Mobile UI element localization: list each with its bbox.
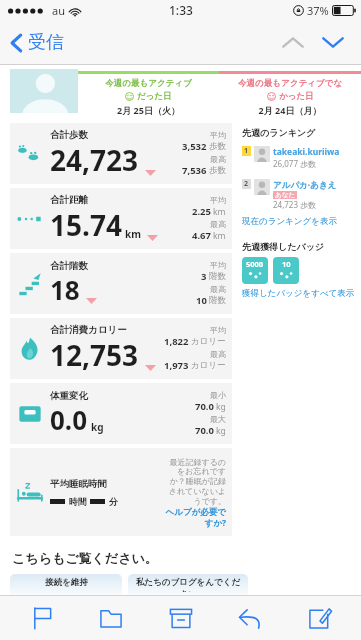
button[interactable]: Flag [14, 596, 70, 640]
button[interactable]: 5000 [242, 257, 268, 284]
button[interactable]: 合計階数 [10, 253, 232, 314]
staticText: 最高 [210, 219, 226, 229]
staticText: 歩数 [209, 141, 226, 152]
staticText: こちらもご覧ください。 [12, 550, 158, 566]
staticText: 15.74 [50, 206, 122, 244]
staticText: 最大 [210, 414, 226, 424]
button[interactable]: Next message [313, 22, 353, 62]
staticText: au [52, 3, 65, 18]
button[interactable]: 10 [273, 257, 299, 284]
staticText: kg [216, 425, 226, 437]
staticText: 0.0 [50, 402, 88, 437]
staticText: 今週の最もアクティブでな [219, 78, 361, 89]
staticText: 平均 [210, 260, 226, 270]
staticText: 平均睡眠時間 [50, 478, 107, 490]
staticText: 階数 [209, 295, 226, 306]
button[interactable]: Reply [222, 596, 278, 640]
staticText: 最高 [210, 349, 226, 359]
staticText: あなた [275, 191, 295, 199]
staticText: 2 [244, 179, 249, 189]
staticText: km [213, 206, 226, 218]
staticText: kg [216, 401, 226, 413]
staticText: 1,822 [164, 335, 189, 348]
staticText: 7,536 [182, 164, 207, 177]
button[interactable]: ヘルプが必要ですか? [164, 507, 226, 528]
staticText: 10 [282, 259, 291, 269]
staticText: 18 [50, 272, 80, 307]
staticText: 歩数 [209, 165, 226, 176]
staticText: 最高 [210, 284, 226, 294]
staticText: 平均 [210, 325, 226, 335]
staticText: 最近記録するのをお忘れですか？睡眠が記録されていないようです。 [164, 457, 226, 507]
staticText: 先週のランキング [242, 127, 316, 138]
staticText: 2.25 [192, 205, 211, 218]
button[interactable]: 合計距離 [10, 188, 232, 249]
button[interactable]: 平均睡眠時間 [10, 448, 232, 536]
staticText: アルパカ·あきえ [273, 179, 337, 191]
staticText: 体重変化 [50, 390, 88, 402]
staticText: 12,753 [50, 336, 139, 374]
staticText: 接続を維持 [45, 577, 88, 588]
staticText: カロリー [191, 336, 226, 347]
staticText: 時間 [69, 496, 87, 507]
staticText: 分 [109, 496, 118, 507]
staticText: 2月 24日（月） [219, 104, 361, 116]
button[interactable]: 受信 [6, 27, 68, 58]
button[interactable]: 獲得したバッジをすべて表示 [242, 288, 355, 299]
button[interactable]: Archive [153, 596, 209, 640]
staticText: 受信 [28, 31, 64, 54]
button[interactable]: 合計消費カロリー [10, 318, 232, 379]
staticText: 最小 [210, 390, 226, 400]
staticText: かった日 [279, 91, 314, 102]
staticText: 合計距離 [50, 194, 88, 206]
staticText: 26,077 歩数 [273, 158, 317, 169]
button[interactable]: 接続を維持 [10, 574, 122, 595]
staticText: 24,723 [50, 141, 139, 179]
staticText: 階数 [209, 271, 226, 282]
staticText: 4.67 [192, 229, 211, 242]
staticText: 1:33 [169, 2, 193, 18]
button[interactable]: Move to folder [83, 596, 139, 640]
staticText: 1,973 [164, 359, 189, 372]
button[interactable]: 2 [242, 179, 355, 210]
staticText: 最高 [210, 154, 226, 164]
staticText: 24,723 歩数 [273, 199, 317, 210]
button[interactable]: Compose [292, 596, 348, 640]
staticText: 70.0 [195, 424, 214, 437]
staticText: km [213, 230, 226, 242]
button[interactable]: 合計歩数 [10, 123, 232, 184]
staticText: 今週の最もアクティブ [78, 78, 219, 89]
staticText: 3 [201, 270, 207, 283]
button[interactable]: 1 [242, 146, 355, 169]
staticText: takeaki.kuriiwa [273, 146, 340, 158]
staticText: だった日 [137, 91, 172, 102]
staticText: 平均 [210, 195, 226, 205]
button[interactable]: Previous message [273, 22, 313, 62]
staticText: 合計歩数 [50, 129, 88, 141]
staticText: 2月 25日（火） [78, 104, 219, 116]
staticText: カロリー [191, 360, 226, 371]
staticText: 平均 [210, 130, 226, 140]
staticText: 1 [244, 146, 249, 156]
staticText: 10 [196, 294, 207, 307]
staticText: 先週獲得したバッジ [242, 241, 325, 252]
staticText: 合計階数 [50, 260, 88, 272]
staticText: 3,532 [182, 140, 207, 153]
staticText: 37% [307, 3, 329, 18]
staticText: 5000 [246, 259, 264, 269]
staticText: 合計消費カロリー [50, 324, 127, 336]
button[interactable]: 私たちのブログをんでください [128, 574, 248, 595]
staticText: 70.0 [195, 400, 214, 413]
staticText: km [125, 227, 141, 241]
staticText: 私たちのブログをんでください [132, 577, 244, 592]
button[interactable]: 体重変化 [10, 383, 232, 444]
button[interactable]: 現在のランキングを表示 [242, 216, 337, 227]
staticText: kg [91, 420, 104, 434]
